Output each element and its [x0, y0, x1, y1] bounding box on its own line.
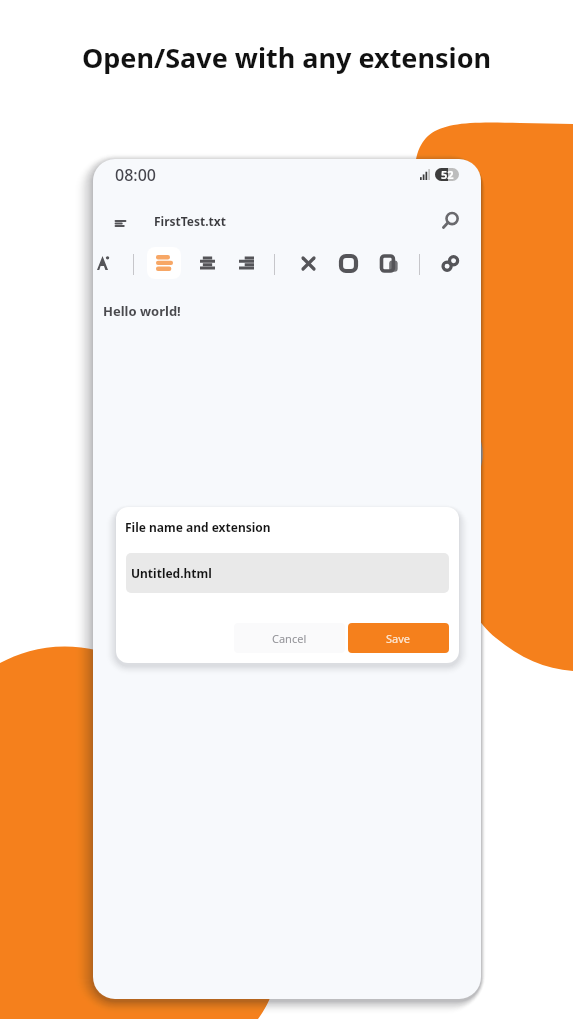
button[interactable]: Cancel: [234, 623, 345, 653]
staticText: Untitled.html: [131, 565, 212, 581]
button[interactable]: Paste: [374, 248, 404, 278]
staticText: 52: [441, 168, 454, 180]
button[interactable]: Menu: [110, 214, 130, 232]
staticText: FirstTest.txt: [154, 213, 226, 229]
staticText: Cancel: [272, 631, 307, 646]
staticText: Hello world!: [103, 302, 181, 320]
button[interactable]: Search: [440, 209, 462, 231]
button[interactable]: Undo: [333, 248, 363, 278]
button[interactable]: Close: [293, 248, 323, 278]
staticText: Open/Save with any extension: [0, 39, 573, 76]
staticText: File name and extension: [125, 519, 271, 535]
button[interactable]: Align centre: [192, 248, 222, 278]
button[interactable]: Link: [435, 248, 465, 278]
button[interactable]: Save: [348, 623, 449, 653]
button[interactable]: Document: [147, 247, 181, 279]
button[interactable]: Untitled.html: [126, 553, 449, 593]
staticText: Save: [386, 631, 411, 646]
staticText: 08:00: [115, 164, 156, 186]
button[interactable]: Align right: [231, 248, 261, 278]
button[interactable]: Font: [93, 248, 118, 278]
